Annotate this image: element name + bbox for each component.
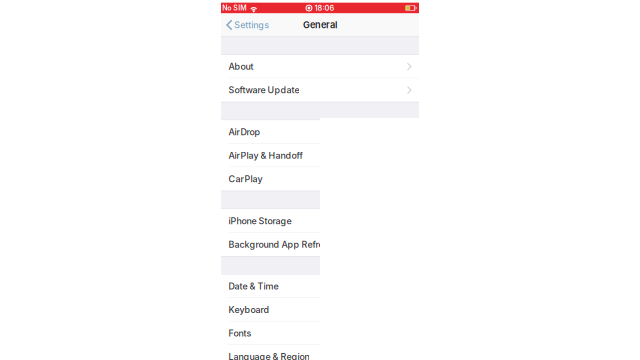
button[interactable]: About	[221, 55, 419, 78]
staticText: Date & Time	[228, 281, 278, 291]
button[interactable]: AirDrop	[221, 120, 419, 144]
staticText: 18:06	[314, 4, 334, 12]
staticText: Settings	[234, 20, 269, 30]
button[interactable]: Settings	[221, 13, 274, 36]
button[interactable]: Background App Refresh	[221, 233, 419, 256]
staticText: AirPlay & Handoff	[228, 150, 302, 161]
staticText: General	[303, 19, 337, 30]
staticText: AirDrop	[228, 127, 260, 137]
staticText: Background App Refresh	[228, 239, 333, 250]
staticText: CarPlay	[228, 174, 262, 184]
button[interactable]: Language & Region	[221, 345, 419, 360]
button[interactable]: Date & Time	[221, 275, 419, 298]
button[interactable]: AirPlay & Handoff	[221, 144, 419, 167]
button[interactable]: iPhone Storage	[221, 209, 419, 233]
staticText: Fonts	[228, 328, 251, 338]
button[interactable]: CarPlay	[221, 167, 419, 191]
button[interactable]: Fonts	[221, 322, 419, 345]
button[interactable]: Software Update	[221, 78, 419, 102]
staticText: Keyboard	[228, 304, 269, 315]
staticText: No SIM	[222, 4, 246, 12]
staticText: About	[228, 61, 253, 72]
staticText: Language & Region	[228, 351, 309, 360]
staticText: iPhone Storage	[228, 216, 291, 226]
staticText: Software Update	[228, 85, 299, 95]
button[interactable]: Keyboard	[221, 298, 419, 322]
